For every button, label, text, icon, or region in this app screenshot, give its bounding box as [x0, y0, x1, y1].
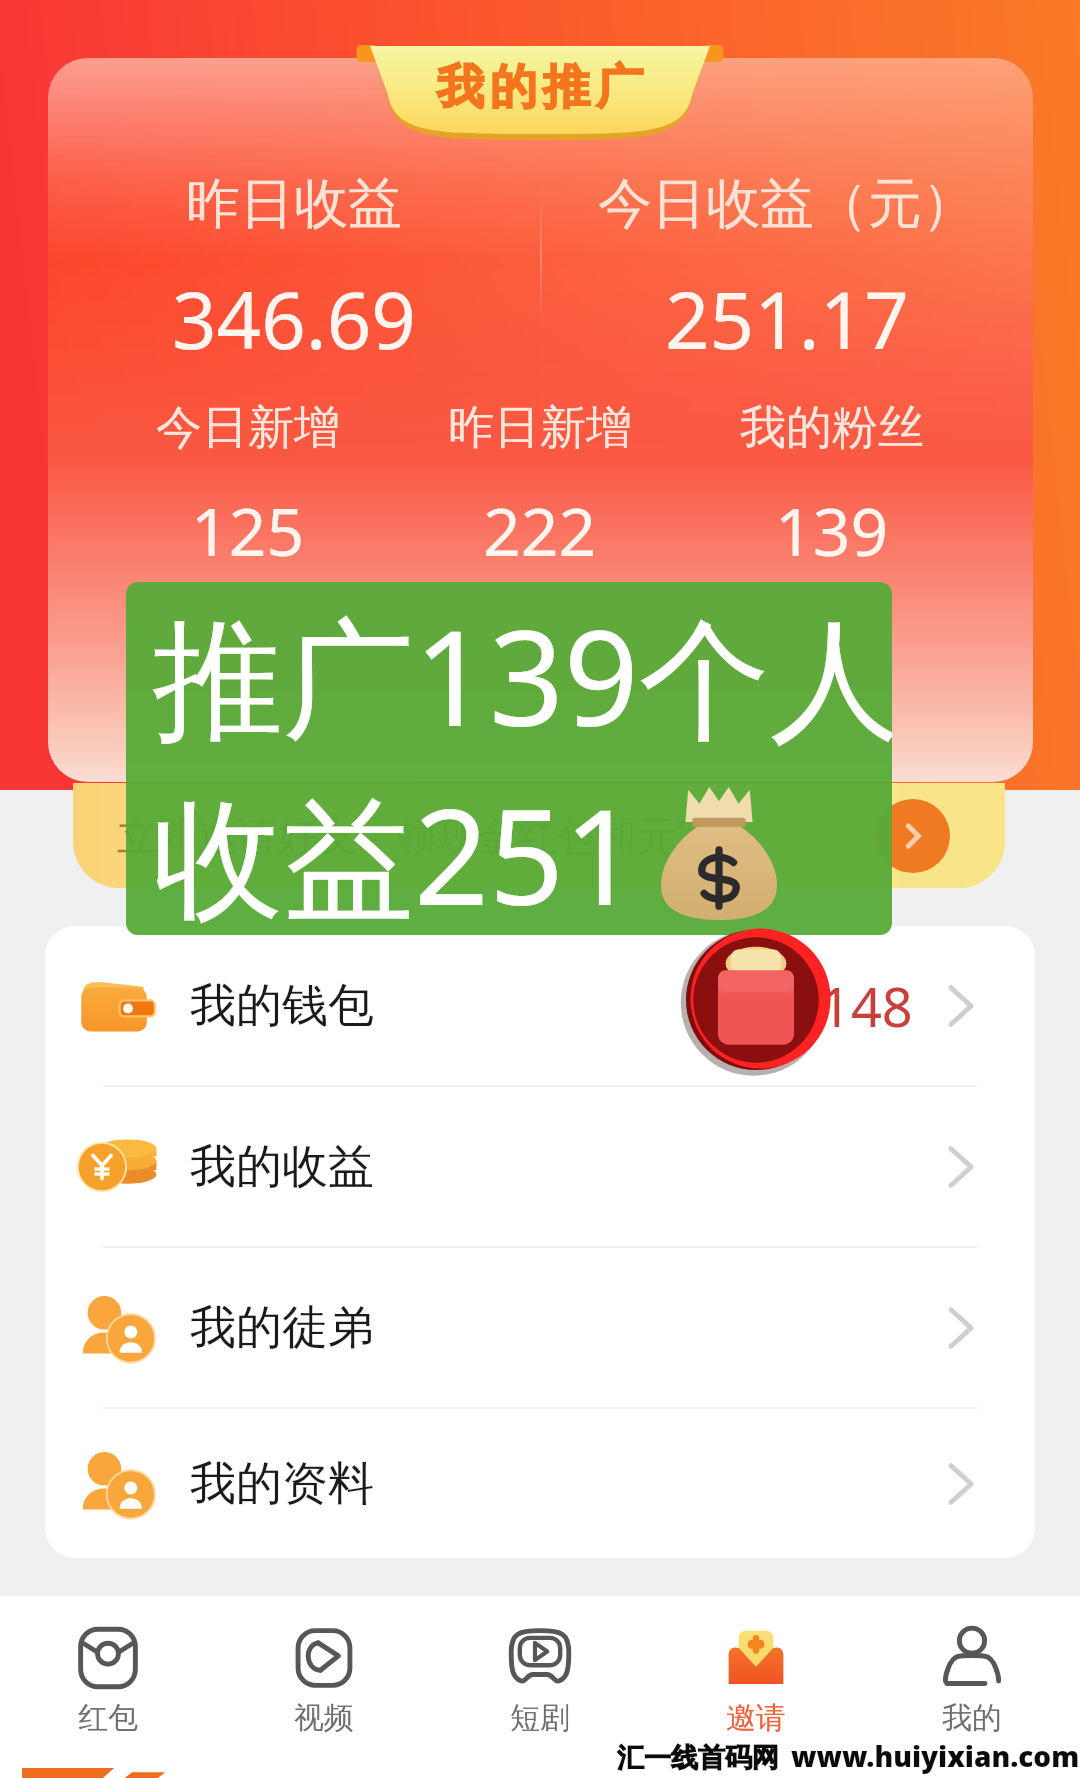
button[interactable]: 我的钱包	[45, 926, 1035, 1085]
staticText: 收益251	[152, 765, 639, 935]
staticText: 昨日新增	[448, 399, 632, 457]
staticText: 今日收益（元）	[598, 170, 976, 238]
button[interactable]: 我的资料	[45, 1409, 1035, 1558]
staticText: 我的推广	[434, 58, 646, 117]
staticText: 346.69	[172, 266, 416, 372]
other: Go	[876, 799, 950, 873]
staticText: 我的收益	[190, 1138, 374, 1196]
staticText: 视频	[294, 1699, 354, 1737]
button[interactable]: 立即邀请好友，领现金红包和元宝	[73, 783, 1005, 888]
staticText: 我的徒弟	[190, 1299, 374, 1357]
staticText: 125	[191, 485, 305, 575]
staticText: 汇一线首码网	[617, 1741, 779, 1775]
staticText: 我的资料	[190, 1455, 374, 1513]
other: Red packet	[680, 931, 832, 1069]
button[interactable]: 红包	[0, 1596, 216, 1778]
button[interactable]: 我的	[864, 1596, 1080, 1778]
staticText: 251.17	[665, 266, 909, 372]
button[interactable]: 短剧	[432, 1596, 648, 1778]
staticText: 昨日收益	[186, 170, 402, 238]
staticText: 我的钱包	[190, 977, 374, 1035]
staticText: 短剧	[510, 1699, 570, 1737]
staticText: 148	[820, 969, 913, 1043]
button[interactable]: 我的收益	[45, 1087, 1035, 1246]
button[interactable]: 我的徒弟	[45, 1248, 1035, 1407]
staticText: 邀请	[726, 1699, 786, 1737]
staticText: 我的	[942, 1699, 1002, 1737]
staticText: 推广139个人	[152, 586, 892, 765]
staticText: 立即邀请好友，领现金红包和元宝	[117, 811, 717, 861]
button[interactable]: 视频	[216, 1596, 432, 1778]
button[interactable]: 邀请	[648, 1596, 864, 1778]
staticText: 红包	[78, 1699, 138, 1737]
staticText: 222	[483, 485, 597, 575]
staticText: www.huiyixian.com	[791, 1737, 1080, 1775]
staticText: 我的粉丝	[740, 399, 924, 457]
staticText: 139	[775, 485, 889, 575]
staticText: 今日新增	[156, 399, 340, 457]
